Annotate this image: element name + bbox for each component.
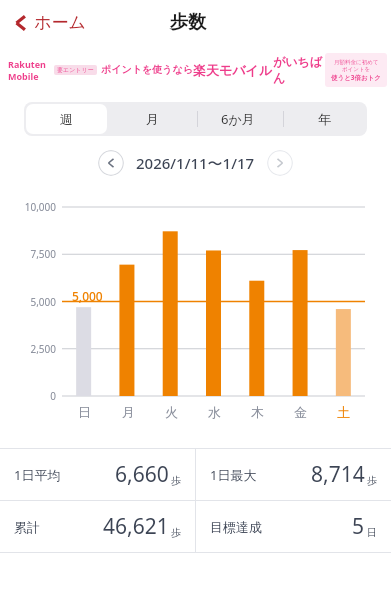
staticText: 火 [165,404,178,420]
button[interactable]: 累計 [0,501,195,552]
staticText: Mobile [8,70,39,82]
button[interactable]: 6か月 [197,104,279,134]
staticText: 2026/1/11〜1/17 [136,153,255,173]
staticText: ポイントを使うなら [101,63,193,76]
staticText: 5 [352,512,365,541]
staticText: 土 [337,404,350,420]
staticText: ホーム [34,12,86,33]
staticText: 要エントリー [57,66,94,74]
staticText: 月 [146,111,159,127]
button[interactable]: 広告 [0,45,391,94]
staticText: 金 [294,404,307,420]
staticText: 水 [208,404,221,420]
staticText: 月額料金に初めて [334,59,379,66]
staticText: 日 [367,526,377,539]
button[interactable]: 月 [111,104,193,134]
staticText: 2,500 [0,342,56,356]
button[interactable]: 年 [283,104,365,134]
staticText: 日 [78,404,91,420]
staticText: 0 [0,389,56,403]
staticText: 10,000 [0,200,56,214]
staticText: 8,714 [311,460,365,489]
staticText: 楽天モバイル [193,62,273,78]
button[interactable]: ホーム [10,8,90,37]
staticText: ポイントを [342,66,371,73]
staticText: 歩 [171,474,181,487]
staticText: 月 [122,404,135,420]
staticText: 年 [318,111,331,127]
button[interactable]: 1日平均 [0,449,195,500]
staticText: 歩数 [170,11,206,34]
staticText: 7,500 [0,247,56,261]
staticText: がいちばん [273,54,323,86]
button[interactable]: 次の週 [267,150,293,176]
staticText: 目標達成 [210,519,262,535]
button[interactable]: 前の週 [98,150,124,176]
staticText: 6か月 [221,110,255,128]
staticText: 46,621 [103,512,169,541]
staticText: 5,000 [0,295,56,309]
staticText: 1日平均 [14,466,61,484]
staticText: 歩 [171,526,181,539]
staticText: Rakuten [8,58,46,70]
staticText: 5,000 [72,288,103,304]
staticText: 木 [251,404,264,420]
staticText: 累計 [14,519,40,535]
staticText: 週 [60,111,73,127]
staticText: 歩 [367,474,377,487]
button[interactable]: 1日最大 [196,449,391,500]
staticText: 使うと3倍おトク [331,73,381,82]
staticText: 1日最大 [210,466,257,484]
button[interactable]: 目標達成 [196,501,391,552]
staticText: 6,660 [115,460,169,489]
button[interactable]: 週 [26,104,107,134]
